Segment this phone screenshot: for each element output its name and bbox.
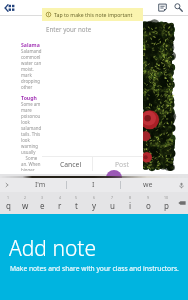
staticText: w bbox=[22, 200, 29, 211]
button[interactable]: Back to library bbox=[1, 0, 18, 16]
staticText: we bbox=[143, 180, 153, 190]
staticText: 2 bbox=[24, 195, 27, 200]
staticText: r bbox=[58, 200, 62, 211]
staticText: mare predators from attacking by bbox=[21, 107, 42, 113]
staticText: o bbox=[146, 200, 151, 211]
staticText: 7 bbox=[111, 195, 114, 200]
staticText: Add note bbox=[9, 234, 97, 263]
staticText: bigger than the one it had as a bbox=[21, 167, 42, 171]
button[interactable]: Cancel bbox=[42, 157, 92, 171]
staticText: poisonous. Other salamanders just bbox=[21, 113, 42, 119]
staticText: other males. bbox=[21, 84, 42, 90]
staticText: Post bbox=[115, 160, 129, 169]
button[interactable]: Notes bbox=[154, 0, 170, 15]
staticText: look bigger than it is, a useful bbox=[21, 137, 42, 143]
button[interactable]: 5 bbox=[68, 192, 85, 214]
staticText: I'm bbox=[35, 180, 46, 190]
staticText: I bbox=[92, 180, 95, 190]
button[interactable]: we bbox=[121, 178, 174, 192]
button[interactable]: 7 bbox=[103, 192, 121, 214]
staticText: 9 bbox=[147, 195, 150, 200]
button[interactable]: Search bbox=[170, 0, 186, 15]
staticText: Some amphibians are tough. Sala- bbox=[21, 101, 42, 107]
staticText: commonly live in damp places. A bbox=[21, 54, 42, 60]
staticText: Tough guys bbox=[21, 94, 42, 101]
button[interactable]: Tap to make this note important bbox=[42, 8, 143, 21]
staticText: moist. Most salamanders do not bbox=[21, 66, 42, 72]
button[interactable]: More suggestions bbox=[0, 178, 14, 192]
staticText: water can live in ponds and bbox=[21, 60, 42, 66]
staticText: 6 bbox=[93, 195, 96, 200]
staticText: salamander has bright patches on bbox=[21, 125, 42, 131]
staticText: 10 bbox=[164, 195, 169, 200]
button[interactable]: 1 bbox=[0, 192, 17, 214]
button[interactable]: I'm bbox=[14, 178, 66, 192]
staticText: i bbox=[129, 200, 132, 211]
button[interactable]: 10 bbox=[157, 192, 175, 214]
staticText: 1 bbox=[7, 195, 10, 200]
button[interactable]: Voice input bbox=[174, 178, 188, 192]
staticText: usually both tactics are used. bbox=[21, 149, 42, 155]
button[interactable]: 6 bbox=[85, 192, 103, 214]
staticText: Salamanders are amphibians that bbox=[21, 48, 42, 54]
staticText: dropping a scent to warn off bbox=[21, 78, 42, 84]
staticText: tails. This defends against being bbox=[21, 131, 42, 137]
staticText: Some live in water all their bbox=[21, 155, 42, 161]
staticText: mark their territory or, instead, bbox=[21, 72, 42, 78]
staticText: Enter your note bbox=[46, 25, 92, 33]
staticText: Tap to make this note important bbox=[54, 11, 133, 18]
staticText: 8 bbox=[129, 195, 132, 200]
button[interactable]: 2 bbox=[17, 192, 34, 214]
staticText: u bbox=[110, 200, 115, 211]
button[interactable]: Backspace bbox=[175, 192, 188, 214]
staticText: Make notes and share with your class and… bbox=[10, 264, 179, 273]
button[interactable]: 3 bbox=[34, 192, 51, 214]
button[interactable]: I bbox=[67, 178, 120, 192]
staticText: 5 bbox=[75, 195, 78, 200]
staticText: warning to predators, while bbox=[21, 143, 42, 149]
staticText: Salamanders bbox=[21, 41, 42, 48]
staticText: p bbox=[164, 200, 169, 211]
staticText: t bbox=[75, 200, 78, 211]
button[interactable]: 9 bbox=[139, 192, 157, 214]
button[interactable]: 8 bbox=[121, 192, 139, 214]
staticText: q bbox=[6, 200, 11, 211]
staticText: y bbox=[92, 200, 97, 211]
button[interactable]: 4 bbox=[51, 192, 68, 214]
staticText: e bbox=[40, 200, 45, 211]
staticText: look tough; for instance, the bbox=[21, 119, 42, 125]
staticText: an. When it is a tadpole, it eats bbox=[21, 161, 42, 167]
staticText: 4 bbox=[59, 195, 62, 200]
staticText: Cancel bbox=[60, 160, 82, 169]
button[interactable]: Post bbox=[93, 157, 143, 171]
staticText: 3 bbox=[41, 195, 44, 200]
